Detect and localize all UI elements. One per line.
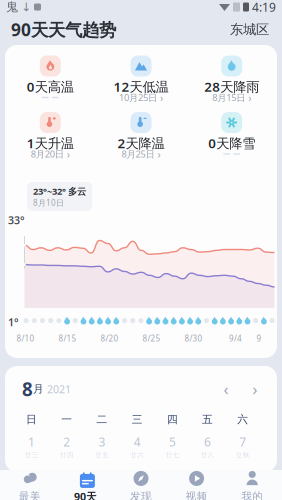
staticText: 最美: [19, 490, 41, 500]
staticText: 六: [237, 413, 248, 426]
staticText: 2021: [44, 382, 71, 396]
staticText: 8: [22, 377, 33, 401]
staticText: ›: [64, 147, 70, 161]
staticText: 立秋: [236, 451, 250, 459]
staticText: 月: [33, 382, 44, 395]
staticText: 4:19: [252, 0, 276, 15]
button[interactable]: 我的: [224, 466, 280, 500]
button[interactable]: 12天低温: [96, 55, 186, 102]
button[interactable]: 2天降温: [96, 112, 186, 159]
staticText: 一: [61, 413, 72, 426]
button[interactable]: 90天: [58, 465, 113, 500]
staticText: 90天: [74, 489, 97, 500]
staticText: 东城区: [230, 21, 269, 38]
staticText: 3: [98, 434, 105, 450]
button[interactable]: 下个月: [246, 380, 264, 398]
button[interactable]: 东城区: [228, 21, 271, 38]
button[interactable]: 6: [190, 434, 225, 459]
staticText: 三: [132, 413, 143, 426]
button[interactable]: 5: [155, 434, 190, 459]
button[interactable]: 1: [14, 434, 49, 459]
button[interactable]: 4: [120, 434, 155, 459]
staticText: 1: [28, 434, 35, 450]
staticText: 发现: [130, 490, 152, 500]
staticText: ›: [154, 147, 160, 161]
staticText: 鬼: [6, 0, 18, 14]
staticText: 28天降雨: [204, 78, 259, 95]
staticText: 1°: [8, 315, 19, 329]
button[interactable]: 发现: [113, 466, 169, 500]
staticText: ›: [245, 90, 251, 105]
staticText: 0天降雪: [208, 134, 255, 152]
staticText: ›: [157, 90, 163, 105]
staticText: 二: [96, 413, 107, 426]
staticText: 廿三: [25, 451, 39, 459]
staticText: 视频: [186, 490, 208, 500]
staticText: 8/15: [58, 333, 76, 344]
staticText: 7: [239, 434, 246, 450]
staticText: 廿八: [201, 451, 215, 459]
staticText: 9: [256, 333, 261, 344]
staticText: ›: [252, 378, 257, 400]
button[interactable]: 7: [225, 434, 260, 459]
staticText: 8月20日: [31, 148, 64, 160]
staticText: 2: [63, 434, 70, 450]
button[interactable]: 3: [84, 434, 120, 459]
button[interactable]: 上个月: [217, 380, 235, 398]
staticText: 8月15日: [212, 91, 245, 104]
staticText: 五: [202, 413, 213, 426]
staticText: 4: [134, 434, 141, 450]
staticText: 廿六: [130, 451, 144, 459]
staticText: 廿五: [95, 451, 109, 459]
button[interactable]: 0天降雪: [186, 112, 277, 159]
staticText: 8/20: [100, 333, 118, 344]
button[interactable]: 最美: [2, 466, 58, 500]
staticText: 12天低温: [113, 78, 168, 95]
button[interactable]: 2: [49, 434, 84, 459]
staticText: 5: [169, 434, 176, 450]
button[interactable]: 视频: [169, 466, 224, 500]
staticText: 23°~32° 多云: [33, 185, 86, 197]
staticText: 33°: [8, 213, 25, 227]
staticText: 四: [167, 413, 178, 426]
staticText: 90天天气趋势: [11, 18, 116, 41]
staticText: 日: [26, 413, 37, 426]
staticText: 0天高温: [27, 78, 74, 95]
staticText: 6: [204, 434, 211, 450]
button[interactable]: 0天高温: [5, 55, 96, 102]
staticText: 廿七: [165, 451, 179, 459]
staticText: 8/25: [142, 333, 160, 344]
button[interactable]: 28天降雨: [186, 55, 277, 102]
staticText: 8月25日: [121, 148, 154, 160]
staticText: 我的: [241, 490, 263, 500]
button[interactable]: 1天升温: [5, 112, 96, 159]
staticText: 2天降温: [117, 134, 164, 152]
staticText: 8/30: [184, 333, 202, 344]
staticText: ↓: [21, 0, 31, 14]
staticText: 1天升温: [27, 134, 74, 152]
staticText: ‹: [223, 378, 228, 400]
staticText: 9/4: [229, 333, 242, 344]
staticText: 8月10日: [33, 197, 64, 208]
staticText: 8/10: [16, 333, 34, 344]
staticText: 10月25日: [119, 91, 157, 104]
staticText: 廿四: [60, 451, 74, 459]
